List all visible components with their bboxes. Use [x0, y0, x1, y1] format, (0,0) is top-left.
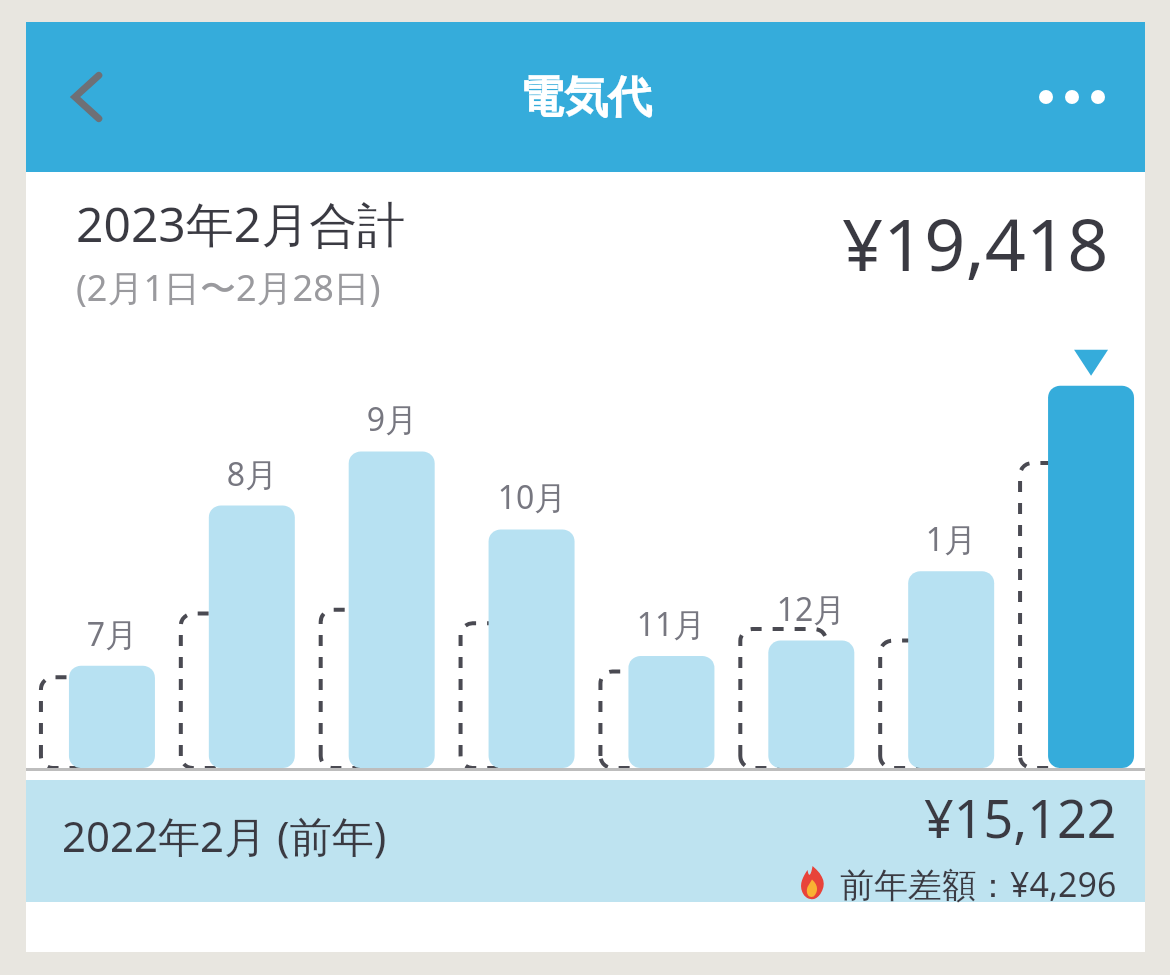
- staticText: ¥19,418: [842, 194, 1109, 292]
- button[interactable]: More options: [1029, 54, 1115, 140]
- staticText: 電気代: [520, 70, 652, 125]
- button[interactable]: 2022年2月 (前年): [26, 780, 1145, 902]
- staticText: 12月: [751, 587, 871, 631]
- button[interactable]: Back: [42, 51, 134, 143]
- staticText: 10月: [472, 475, 592, 519]
- staticText: (2月1日〜2月28日): [76, 263, 381, 312]
- staticText: 1月: [891, 517, 1011, 561]
- staticText: 2023年2月合計: [76, 191, 406, 257]
- staticText: 9月: [332, 397, 452, 441]
- staticText: 前年差額：¥4,296: [840, 861, 1117, 904]
- staticText: ¥15,122: [924, 782, 1117, 853]
- staticText: 11月: [611, 602, 731, 646]
- staticText: 2022年2月 (前年): [62, 807, 387, 864]
- staticText: 8月: [192, 452, 312, 496]
- staticText: 7月: [52, 612, 172, 656]
